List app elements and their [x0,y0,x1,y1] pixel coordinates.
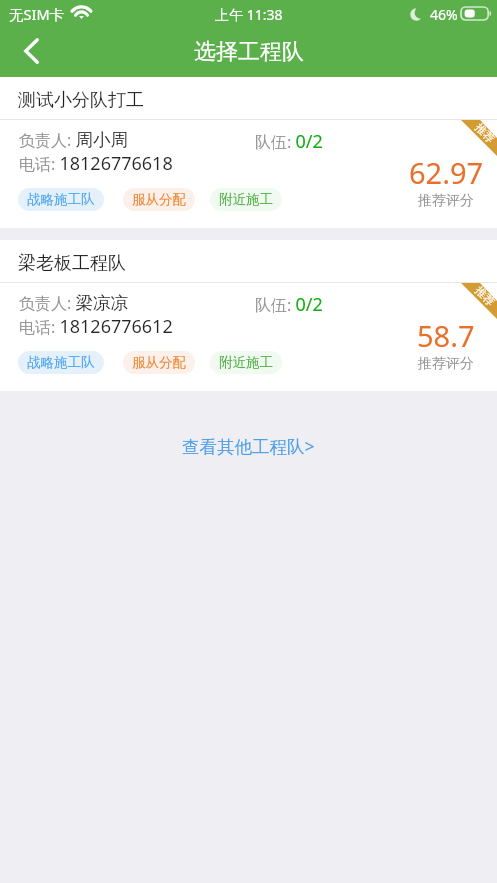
staticText: 46% [430,5,458,24]
staticText: 推荐 [472,283,497,309]
staticText: 查看其他工程队> [182,434,315,458]
staticText: 上午 11:38 [215,5,283,24]
button[interactable]: 战略施工队 [18,351,104,374]
button[interactable]: 战略施工队 [18,188,104,211]
staticText: 附近施工 [219,191,273,208]
staticText: 负责人: 梁凉凉 [19,292,128,314]
staticText: 附近施工 [219,354,273,371]
staticText: 队伍: 0/2 [255,292,323,317]
staticText: 推荐评分 [418,355,474,373]
button[interactable]: 测试小分队打工 [0,77,497,228]
staticText: 梁老板工程队 [18,252,126,275]
staticText: 无SIM卡 [9,4,65,24]
button[interactable]: 服从分配 [123,351,195,374]
staticText: 62.97 [409,153,484,192]
staticText: 战略施工队 [27,354,95,371]
button[interactable]: 梁老板工程队 [0,240,497,391]
staticText: 服从分配 [132,191,186,208]
staticText: 队伍: 0/2 [255,129,323,154]
staticText: 电话: 18126776612 [19,314,173,339]
staticText: 58.7 [417,316,475,355]
button[interactable]: 查看其他工程队> [0,431,497,461]
staticText: 战略施工队 [27,191,95,208]
button[interactable]: 服从分配 [123,188,195,211]
staticText: 推荐评分 [418,192,474,210]
staticText: 负责人: 周小周 [19,129,128,151]
staticText: 测试小分队打工 [18,89,144,112]
staticText: 推荐 [472,120,497,146]
button[interactable]: 附近施工 [210,351,282,374]
button[interactable]: 附近施工 [210,188,282,211]
staticText: 服从分配 [132,354,186,371]
staticText: 选择工程队 [194,38,304,66]
button[interactable]: Back [6,26,56,75]
staticText: 电话: 18126776618 [19,151,173,176]
